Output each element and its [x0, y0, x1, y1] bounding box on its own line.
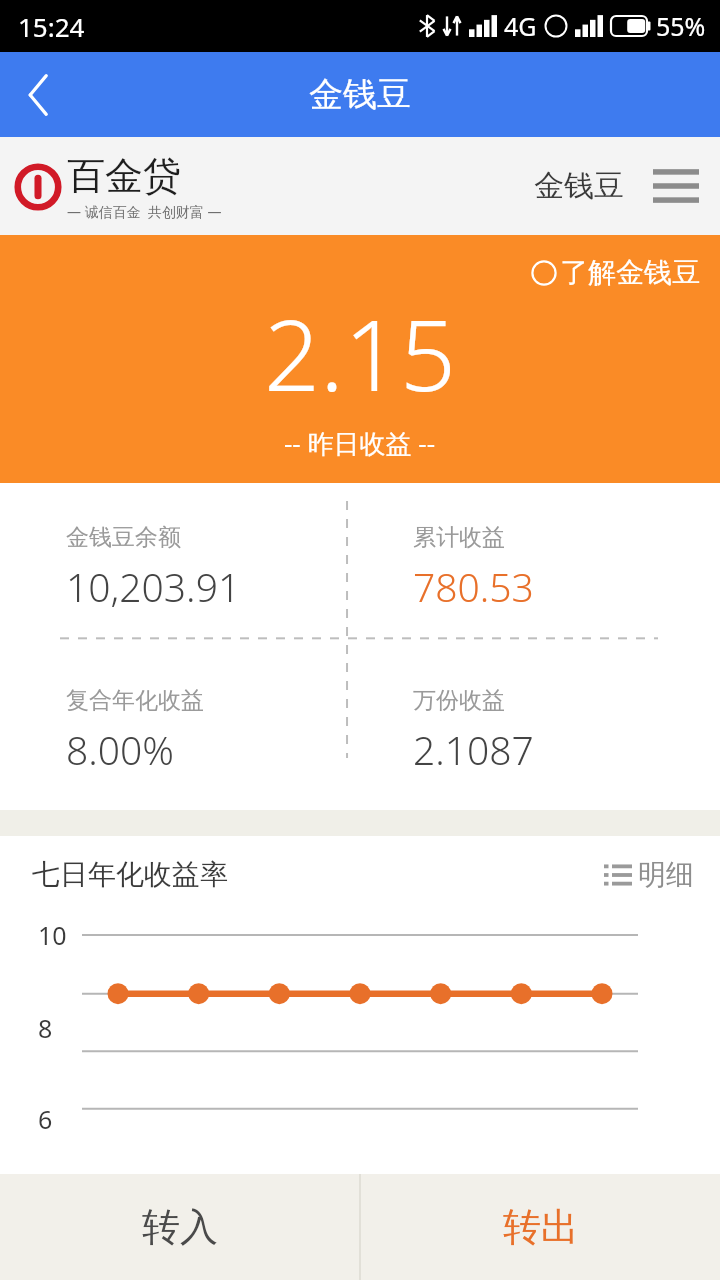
button[interactable]: 明细 — [598, 851, 700, 898]
staticText: 10 — [38, 918, 67, 952]
staticText: 金钱豆 — [534, 167, 624, 205]
button[interactable]: 转出 — [361, 1174, 720, 1280]
staticText: 百金贷 — [67, 152, 181, 200]
button[interactable]: 万份收益 — [347, 638, 720, 810]
staticText: 金钱豆余额 — [66, 523, 181, 552]
staticText: 了解金钱豆 — [560, 255, 700, 290]
staticText: 10,203.91 — [66, 560, 241, 613]
staticText: 万份收益 — [413, 686, 505, 715]
staticText: 55% — [656, 9, 706, 43]
staticText: -- 昨日收益 -- — [284, 425, 436, 461]
staticText: — 诚信百金 共创财富 — — [67, 202, 222, 221]
staticText: 2.15 — [264, 286, 456, 419]
staticText: 8 — [38, 1011, 53, 1045]
button[interactable]: Menu — [650, 160, 702, 212]
staticText: 780.53 — [413, 560, 534, 613]
staticText: 转入 — [142, 1203, 218, 1251]
staticText: 金钱豆 — [309, 73, 411, 116]
staticText: 8.00% — [66, 723, 174, 776]
button[interactable]: 转入 — [0, 1174, 359, 1280]
staticText: 复合年化收益 — [66, 686, 204, 715]
button[interactable]: 累计收益 — [347, 483, 720, 638]
staticText: 2.1087 — [413, 723, 534, 776]
staticText: 15:24 — [18, 9, 85, 44]
staticText: 七日年化收益率 — [32, 857, 228, 892]
button[interactable]: 复合年化收益 — [0, 638, 347, 810]
staticText: 累计收益 — [413, 523, 505, 552]
button[interactable]: 金钱豆 — [528, 161, 630, 211]
button[interactable]: Back — [0, 56, 78, 134]
staticText: 6 — [38, 1102, 53, 1136]
staticText: 4G — [504, 9, 537, 43]
staticText: 明细 — [638, 857, 694, 892]
staticText: 转出 — [503, 1203, 579, 1251]
button[interactable]: 金钱豆余额 — [0, 483, 347, 638]
button[interactable]: 了解金钱豆 — [531, 255, 700, 290]
